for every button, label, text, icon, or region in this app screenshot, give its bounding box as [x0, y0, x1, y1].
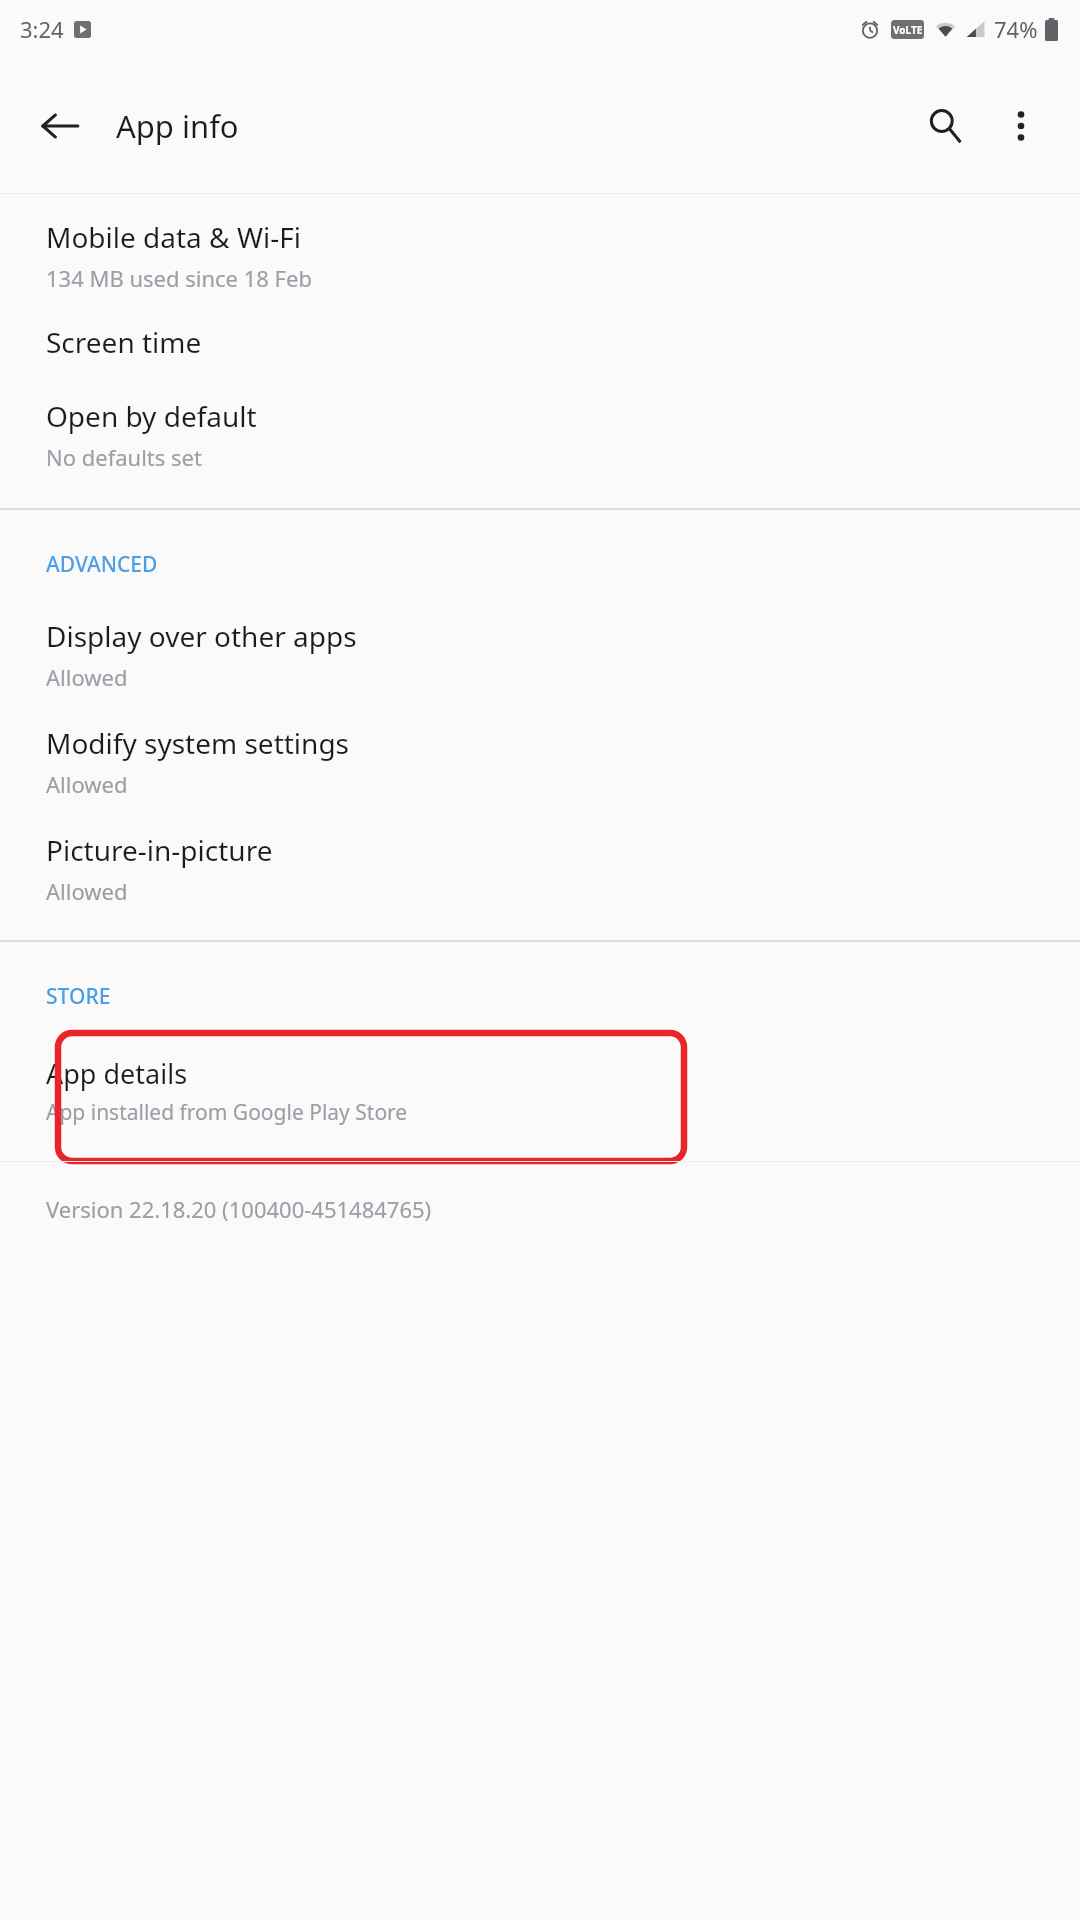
staticText: Version 22.18.20 (100400-451484765) — [46, 1194, 432, 1224]
staticText: Allowed — [46, 662, 128, 692]
staticText: STORE — [46, 982, 111, 1011]
button[interactable]: Open by default — [0, 397, 1080, 472]
staticText: Picture-in-picture — [46, 831, 273, 869]
staticText: 134 MB used since 18 Feb — [46, 263, 312, 293]
staticText: Allowed — [46, 876, 128, 906]
button[interactable]: Picture-in-picture — [0, 831, 1080, 906]
staticText: No defaults set — [46, 442, 202, 472]
button[interactable]: App details — [0, 1033, 1080, 1127]
staticText: Allowed — [46, 769, 128, 799]
staticText: App info — [116, 105, 239, 147]
button[interactable]: Back — [26, 92, 94, 160]
staticText: App details — [46, 1055, 188, 1092]
staticText: VoLTE — [893, 23, 923, 37]
staticText: Screen time — [46, 323, 202, 361]
staticText: Mobile data & Wi-Fi — [46, 218, 301, 256]
staticText: Display over other apps — [46, 617, 357, 655]
button[interactable]: More options — [986, 91, 1056, 161]
staticText: Modify system settings — [46, 724, 350, 762]
staticText: 74% — [994, 14, 1038, 44]
button[interactable]: Screen time — [0, 323, 1080, 361]
staticText: 3:24 — [20, 14, 64, 44]
staticText: Open by default — [46, 397, 257, 435]
staticText: ADVANCED — [46, 550, 158, 579]
staticText: App installed from Google Play Store — [46, 1098, 408, 1127]
button[interactable]: Mobile data & Wi-Fi — [0, 218, 1080, 293]
button[interactable]: Modify system settings — [0, 724, 1080, 799]
button[interactable]: Display over other apps — [0, 617, 1080, 692]
button[interactable]: Search — [910, 91, 980, 161]
